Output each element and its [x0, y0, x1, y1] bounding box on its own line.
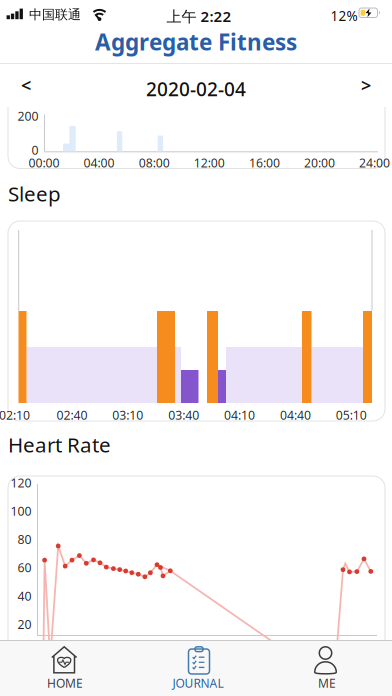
staticText: 上午 2:22 — [166, 6, 231, 26]
staticText: 12% — [330, 6, 357, 25]
button[interactable]: ME — [267, 642, 387, 694]
staticText: 100 — [11, 503, 32, 519]
staticText: 05:10 — [336, 407, 367, 423]
staticText: 中国联通 — [29, 6, 81, 23]
staticText: 200 — [17, 107, 38, 124]
staticText: 2020-02-04 — [146, 76, 246, 102]
staticText: ME — [318, 675, 336, 691]
staticText: JOURNAL — [172, 675, 223, 691]
staticText: 08:00 — [139, 154, 170, 171]
staticText: HOME — [47, 675, 83, 691]
staticText: > — [361, 73, 371, 97]
staticText: Heart Rate — [8, 430, 111, 458]
staticText: 04:00 — [84, 154, 115, 171]
staticText: 24:00 — [359, 154, 390, 171]
staticText: 02:10 — [0, 407, 30, 423]
button[interactable]: HOME — [5, 642, 125, 694]
staticText: 20 — [18, 616, 32, 633]
staticText: 04:40 — [280, 407, 311, 423]
staticText: 20:00 — [304, 154, 335, 171]
staticText: 03:40 — [168, 407, 199, 423]
staticText: 0 — [31, 141, 38, 158]
staticText: 60 — [18, 559, 32, 576]
staticText: 12:00 — [194, 154, 225, 171]
staticText: < — [21, 73, 31, 97]
staticText: 04:10 — [224, 407, 255, 423]
staticText: 120 — [11, 474, 32, 491]
staticText: 00:00 — [28, 154, 59, 171]
staticText: Aggregate Fitness — [95, 26, 297, 57]
staticText: 02:40 — [56, 407, 87, 423]
staticText: Sleep — [8, 179, 61, 207]
button[interactable]: < — [4, 63, 48, 107]
staticText: 16:00 — [249, 154, 280, 171]
staticText: 40 — [18, 587, 32, 604]
button[interactable]: JOURNAL — [138, 642, 258, 694]
button[interactable]: > — [344, 63, 388, 107]
staticText: 03:10 — [112, 407, 143, 423]
staticText: 80 — [18, 531, 32, 548]
